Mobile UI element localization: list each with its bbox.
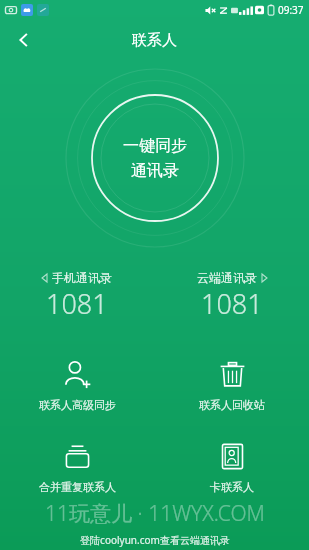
staticText: 1081 — [46, 285, 108, 322]
button[interactable]: 手机通讯录 — [0, 268, 154, 324]
staticText: 通讯录 — [131, 161, 179, 181]
staticText: 11玩意儿 · 11WYX.COM — [45, 499, 265, 528]
button[interactable]: 联系人回收站 — [154, 354, 309, 416]
staticText: 09:37 — [278, 3, 304, 17]
staticText: 手机通讯录 — [52, 270, 112, 285]
staticText: 1081 — [201, 285, 263, 322]
staticText: 合并重复联系人 — [39, 480, 116, 494]
staticText: 联系人回收站 — [199, 398, 265, 412]
staticText: 卡联系人 — [210, 480, 254, 494]
staticText: 联系人高级同步 — [39, 398, 116, 412]
button[interactable]: 云端通讯录 — [154, 268, 309, 324]
staticText: 联系人 — [132, 31, 177, 50]
button[interactable]: 卡联系人 — [154, 436, 309, 498]
staticText: 登陆coolyun.com查看云端通讯录 — [80, 533, 230, 547]
button[interactable]: Back — [4, 20, 44, 60]
staticText: 云端通讯录 — [197, 270, 257, 285]
button[interactable]: 联系人高级同步 — [0, 354, 154, 416]
staticText: 一键同步 — [123, 136, 187, 156]
button[interactable]: 一键同步 — [93, 96, 217, 220]
button[interactable]: 合并重复联系人 — [0, 436, 154, 498]
